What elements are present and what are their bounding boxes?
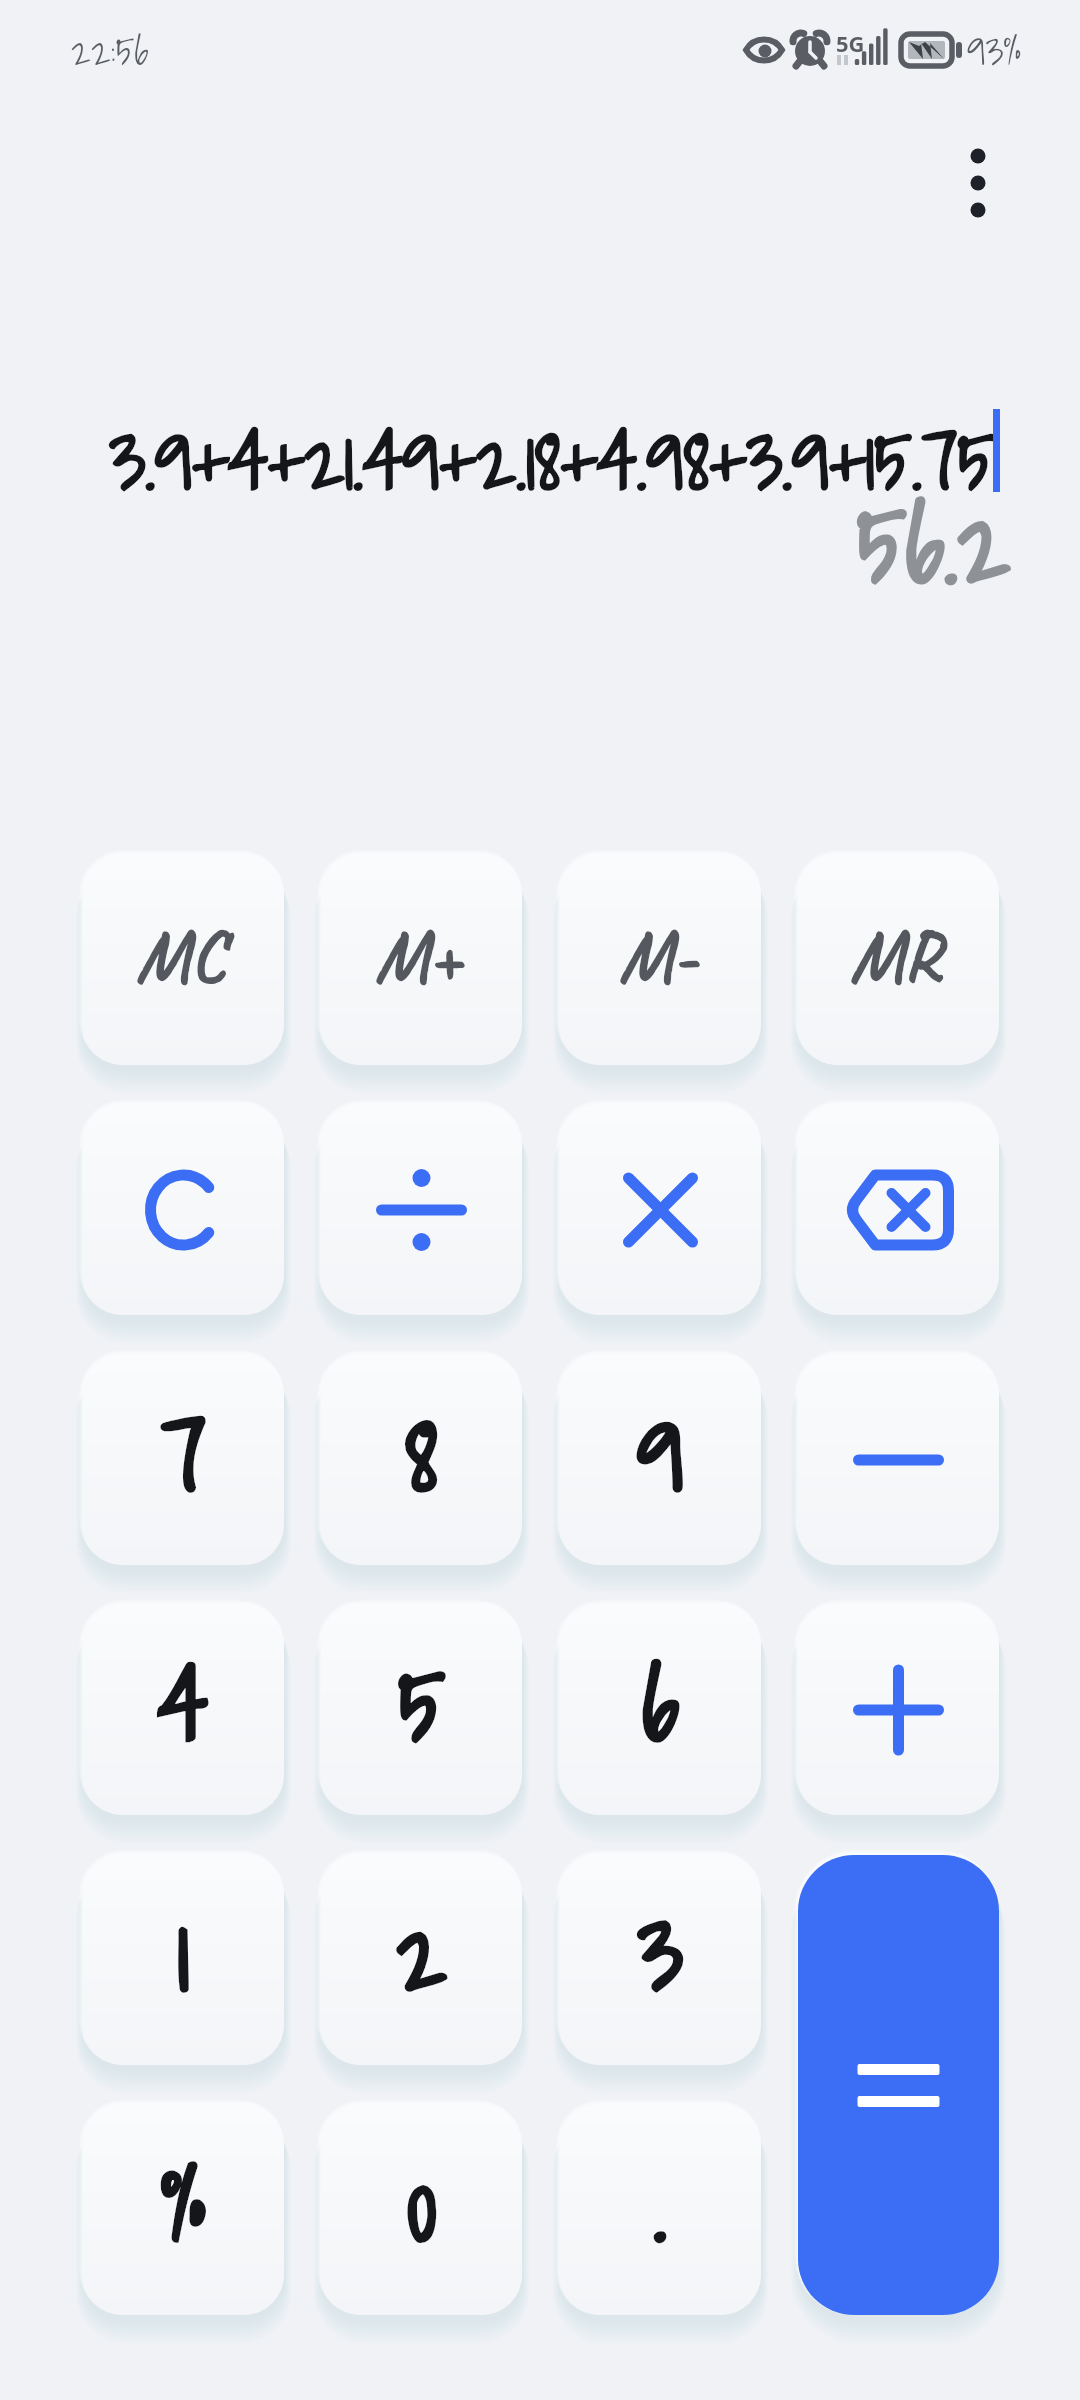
button[interactable]: Minus [798, 1355, 999, 1565]
button[interactable]: MR [798, 855, 999, 1065]
staticText: 93% [967, 19, 1022, 82]
staticText: 6 [643, 1627, 679, 1781]
staticText: 3.9+4+21.49+2.18+4.98+3.9+15.75 [20, 397, 995, 522]
staticText: 1 [178, 1877, 189, 2031]
staticText: M- [619, 909, 697, 1002]
button[interactable]: Clear [83, 1105, 284, 1315]
staticText: MC [136, 909, 225, 1002]
staticText: 0 [407, 2127, 437, 2281]
staticText: M- [619, 909, 697, 1002]
staticText: 4 [159, 1627, 208, 1781]
button[interactable]: 0 [321, 2105, 522, 2315]
button[interactable]: 9 [560, 1355, 761, 1565]
staticText: 4 [159, 1627, 208, 1781]
button[interactable]: Divide [321, 1105, 522, 1315]
button[interactable]: 8 [321, 1355, 522, 1565]
staticText: . [654, 2127, 667, 2281]
staticText: . [654, 2127, 667, 2281]
button[interactable]: . [560, 2105, 761, 2315]
button[interactable]: More options [930, 126, 1028, 240]
button[interactable]: 2 [321, 1855, 522, 2065]
button[interactable]: 3 [560, 1855, 761, 2065]
staticText: 9 [638, 1377, 684, 1531]
staticText: 8 [406, 1377, 438, 1531]
button[interactable]: % [83, 2105, 284, 2315]
staticText: 8 [406, 1377, 438, 1531]
button[interactable]: Equals [798, 1855, 999, 2315]
staticText: 1 [178, 1877, 189, 2031]
button[interactable]: M+ [321, 855, 522, 1065]
staticText: 9 [638, 1377, 684, 1531]
staticText: 3 [638, 1877, 683, 2031]
button[interactable]: 5 [321, 1605, 522, 1815]
button[interactable]: Plus [798, 1605, 999, 1815]
staticText: 22:56 [71, 19, 149, 82]
staticText: 7 [162, 1377, 206, 1531]
button[interactable]: MC [83, 855, 284, 1065]
staticText: 3 [638, 1877, 683, 2031]
staticText: MR [850, 909, 941, 1002]
staticText: 5G [836, 28, 865, 58]
staticText: M+ [375, 909, 462, 1002]
button[interactable]: 4 [83, 1605, 284, 1815]
staticText: 7 [162, 1377, 206, 1531]
staticText: M+ [375, 909, 462, 1002]
staticText: 6 [643, 1627, 679, 1781]
button[interactable]: 6 [560, 1605, 761, 1815]
staticText: 5 [399, 1627, 445, 1781]
button[interactable]: Multiply [560, 1105, 761, 1315]
staticText: 2 [397, 1877, 447, 2031]
staticText: 56.2 [0, 462, 1010, 626]
button[interactable]: 7 [83, 1355, 284, 1565]
staticText: % [162, 2127, 206, 2281]
button[interactable]: M- [560, 855, 761, 1065]
staticText: 0 [407, 2127, 437, 2281]
staticText: % [162, 2127, 206, 2281]
button[interactable]: 1 [83, 1855, 284, 2065]
staticText: 2 [397, 1877, 447, 2031]
staticText: 56.2 [0, 462, 1010, 626]
button[interactable]: Backspace [798, 1105, 999, 1315]
staticText: 3.9+4+21.49+2.18+4.98+3.9+15.75 [20, 397, 995, 522]
staticText: MR [850, 909, 941, 1002]
staticText: MC [136, 909, 225, 1002]
staticText: 5 [399, 1627, 445, 1781]
